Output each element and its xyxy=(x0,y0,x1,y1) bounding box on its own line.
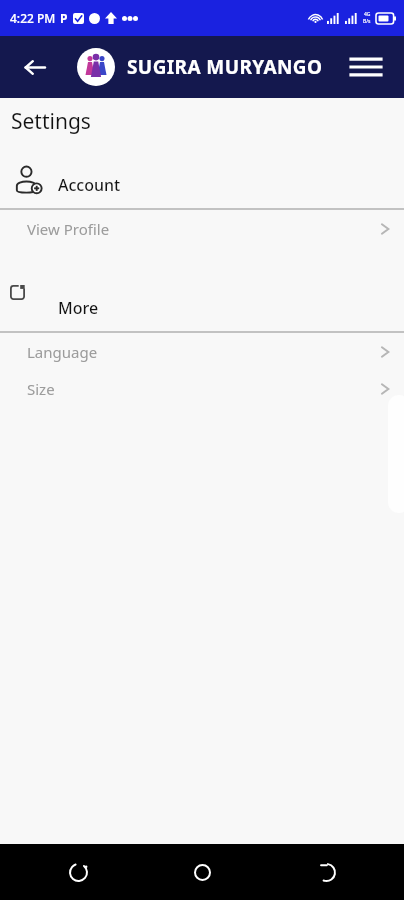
staticText: 4G xyxy=(364,11,371,18)
staticText: Settings xyxy=(11,107,91,136)
staticText: Size xyxy=(27,379,55,399)
staticText: B/s xyxy=(363,18,371,25)
staticText: P xyxy=(60,10,68,26)
button[interactable]: Back xyxy=(304,850,348,894)
button[interactable]: View Profile xyxy=(0,210,404,247)
button[interactable]: Account xyxy=(0,152,404,208)
staticText: 4:22 PM xyxy=(10,10,56,26)
button[interactable]: Recents xyxy=(56,850,100,894)
button[interactable]: More xyxy=(0,275,404,331)
button[interactable]: Language xyxy=(0,333,404,370)
staticText: View Profile xyxy=(27,219,110,239)
staticText: SUGIRA MURYANGO xyxy=(127,54,323,80)
button[interactable]: Size xyxy=(0,370,404,407)
button[interactable]: Menu xyxy=(346,47,386,87)
staticText: More xyxy=(58,297,99,319)
button[interactable]: Back xyxy=(14,47,54,87)
staticText: Account xyxy=(58,174,121,196)
button[interactable]: Home xyxy=(180,850,224,894)
staticText: Language xyxy=(27,342,98,362)
